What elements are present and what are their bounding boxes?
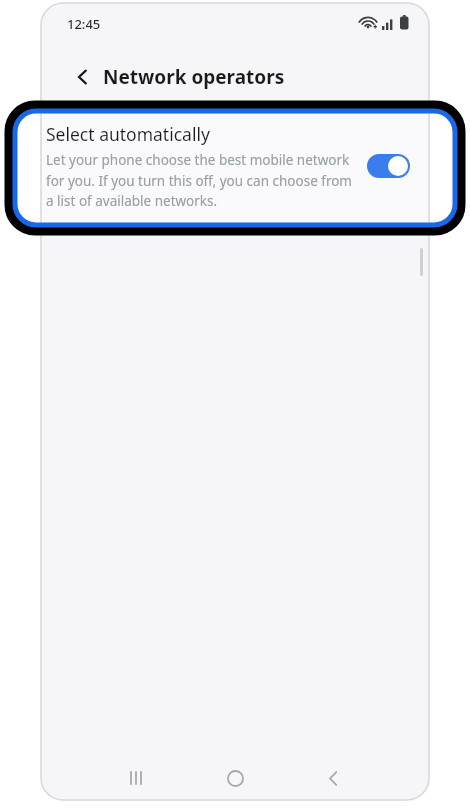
button[interactable]: Select automatically toggle <box>365 149 411 183</box>
button[interactable]: Home <box>219 762 251 794</box>
staticText: 12:45 <box>67 15 101 33</box>
staticText: Select automatically <box>46 122 210 146</box>
button[interactable]: Recent apps <box>121 762 153 794</box>
button[interactable]: Back <box>317 762 349 794</box>
staticText: Network operators <box>103 64 285 90</box>
staticText: Let your phone choose the best mobile ne… <box>46 151 355 210</box>
button[interactable]: Select automatically <box>41 106 429 225</box>
button[interactable]: Back <box>63 57 103 97</box>
